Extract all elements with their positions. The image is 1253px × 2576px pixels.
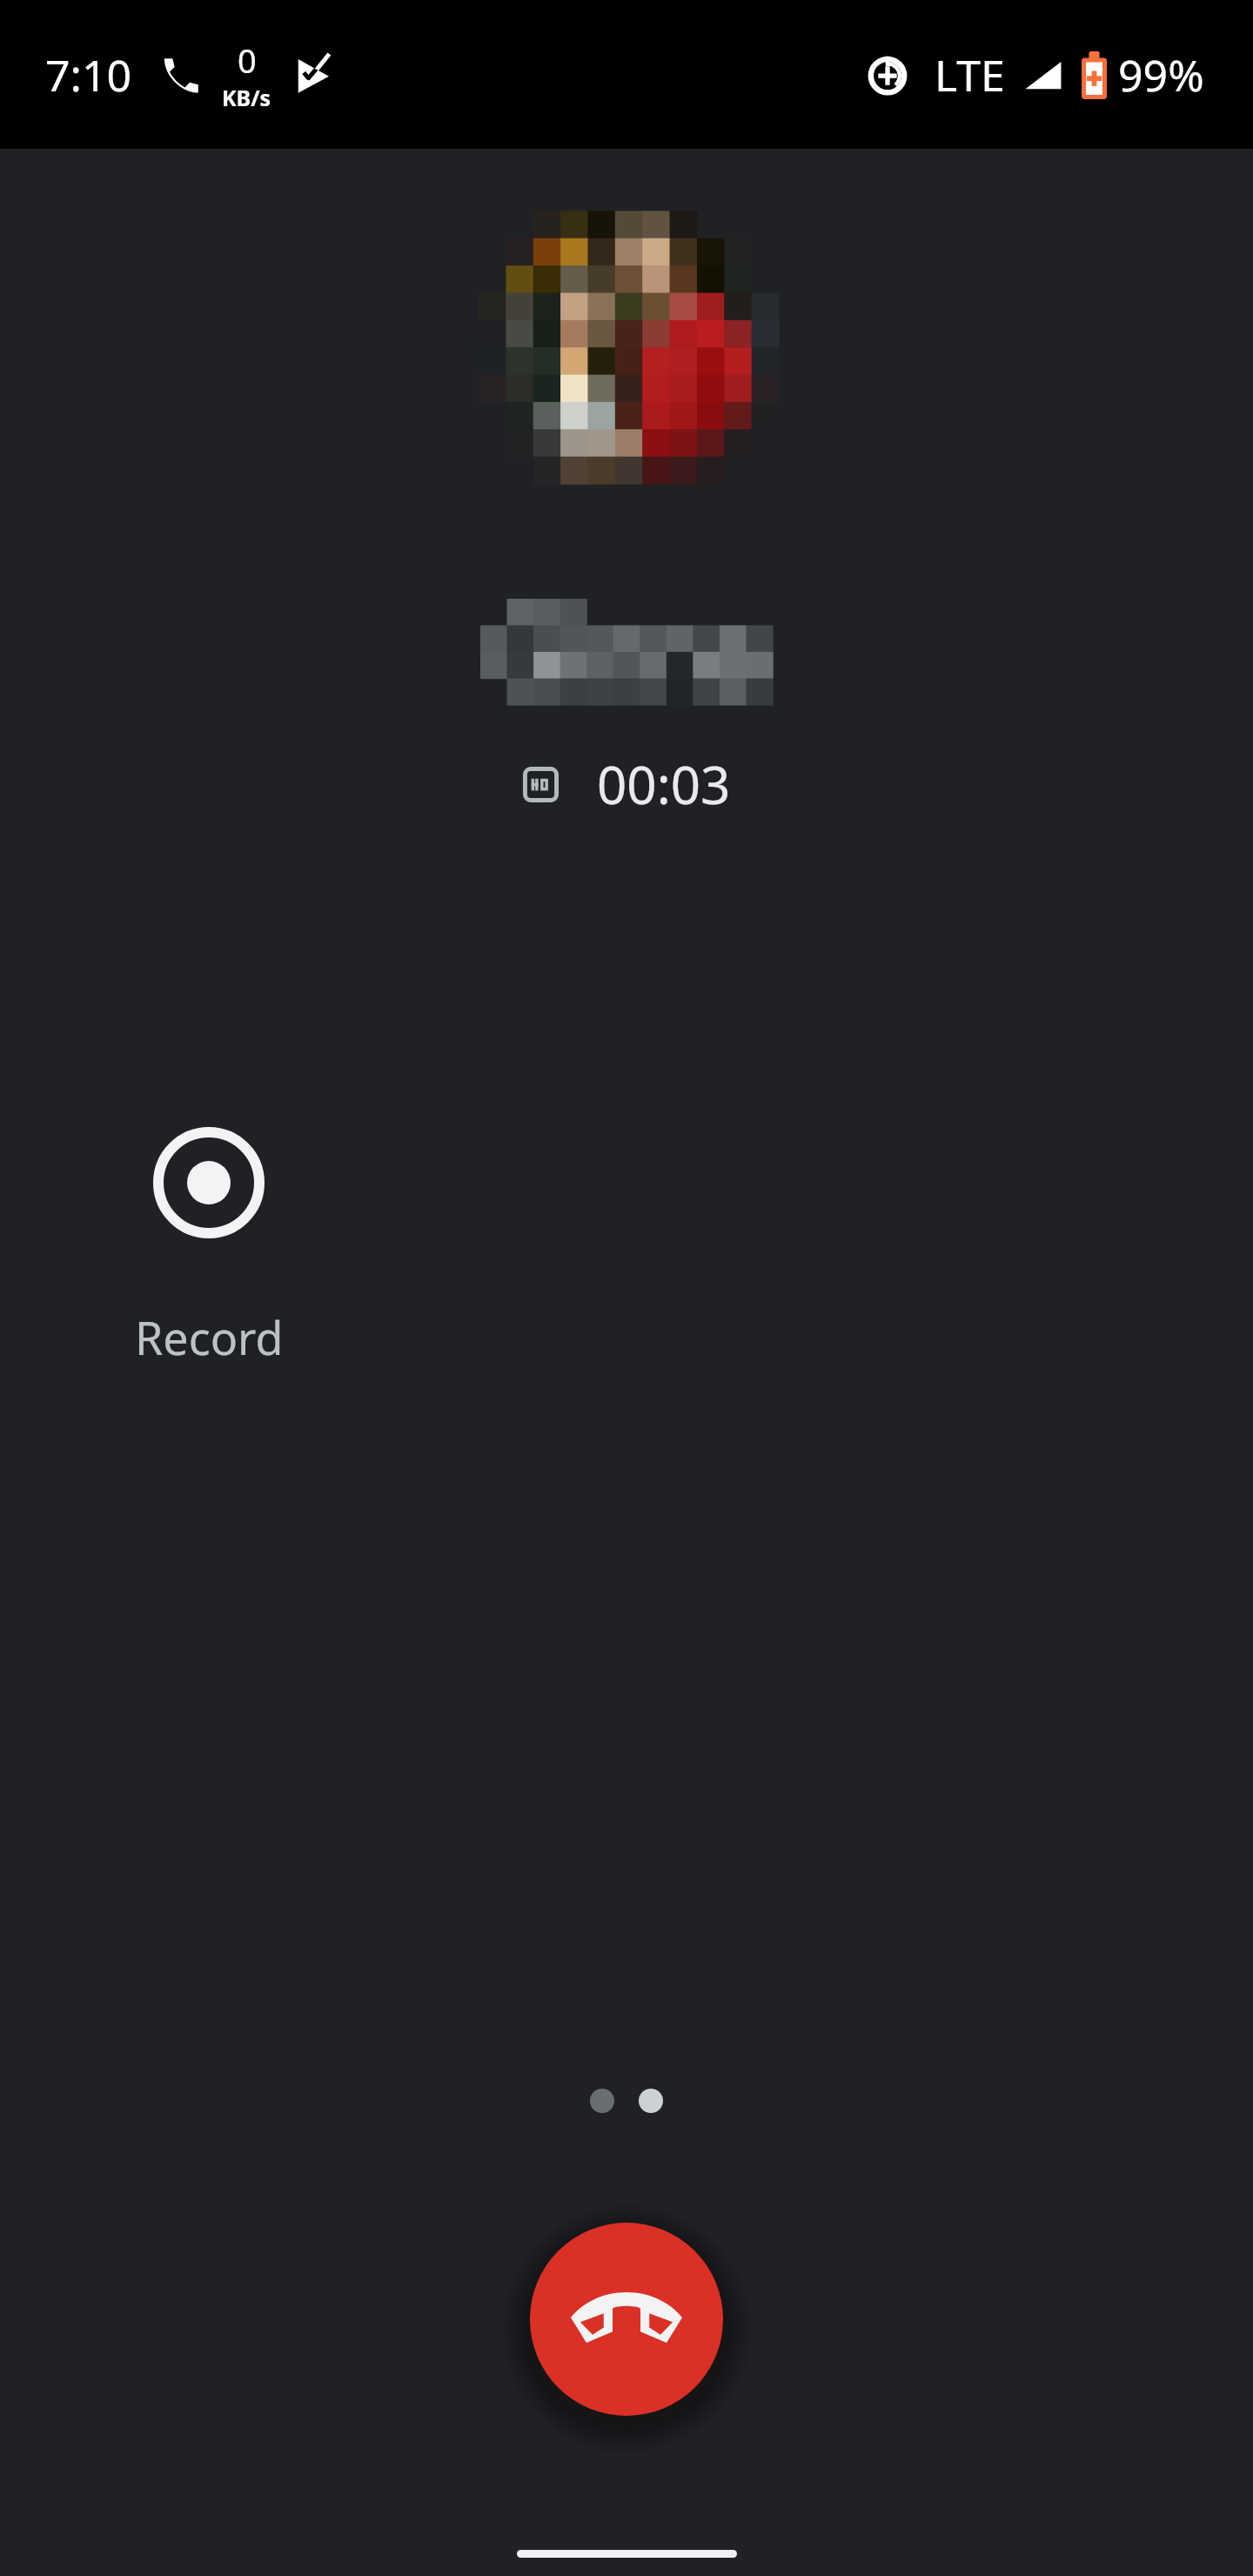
- button[interactable]: Page 2: [639, 2089, 663, 2113]
- button[interactable]: Record call: [131, 1127, 287, 1368]
- staticText: KB/s: [222, 83, 271, 112]
- staticText: 99%: [1118, 45, 1204, 104]
- staticText: LTE: [935, 45, 1005, 104]
- staticText: 0: [238, 37, 257, 83]
- button[interactable]: Page 1: [590, 2089, 614, 2113]
- button[interactable]: End call: [530, 2223, 723, 2416]
- staticText: 7:10: [45, 45, 132, 104]
- staticText: Record: [135, 1306, 284, 1368]
- staticText: 00:03: [597, 748, 731, 820]
